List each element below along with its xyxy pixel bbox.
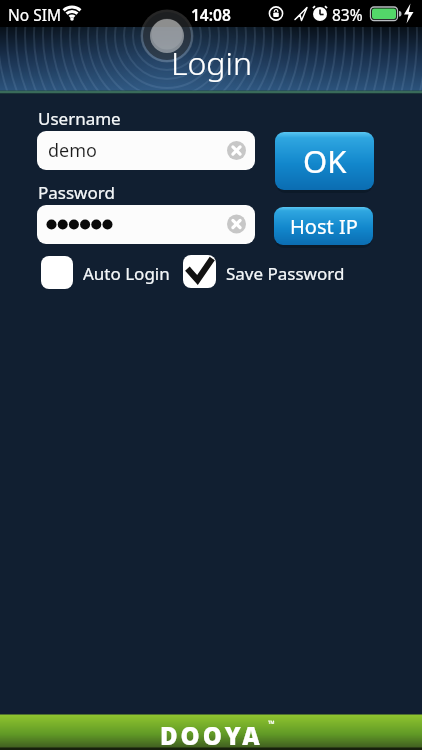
staticText: 83% <box>332 4 363 25</box>
staticText: OK <box>303 140 347 182</box>
staticText: 14:08 <box>191 4 231 25</box>
staticText: ™ <box>268 717 275 729</box>
staticText: Host IP <box>290 213 358 240</box>
staticText: Username <box>38 107 121 130</box>
staticText: Save Password <box>226 262 345 285</box>
staticText: Password <box>38 181 115 204</box>
staticText: No SIM <box>8 4 62 25</box>
staticText: demo <box>48 138 97 163</box>
staticText: Login <box>171 41 252 85</box>
staticText: Auto Login <box>83 262 170 285</box>
staticText: DOOYA <box>160 719 263 750</box>
